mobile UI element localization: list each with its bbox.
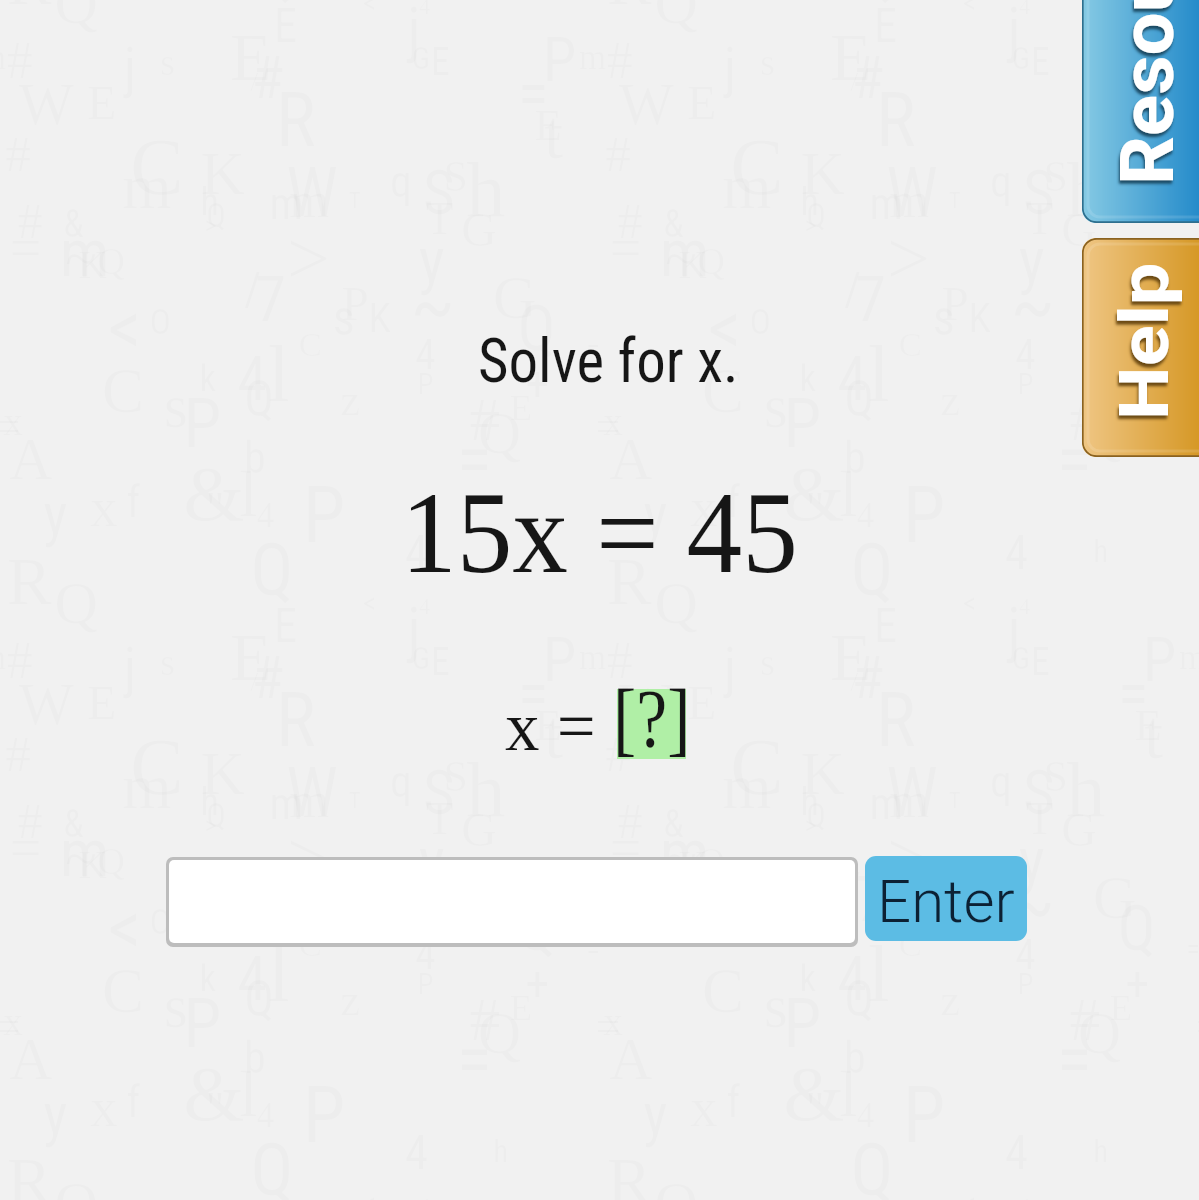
button[interactable]: Enter: [865, 856, 1027, 941]
staticText: Resources: [1103, 0, 1191, 185]
staticText: Solve for x.: [478, 324, 739, 397]
staticText: [?]: [613, 672, 691, 764]
staticText: 15x = 45: [401, 469, 798, 597]
button[interactable]: [166, 857, 858, 947]
staticText: Enter: [877, 866, 1015, 936]
staticText: Help: [1104, 262, 1185, 420]
button[interactable]: Resources: [1082, 0, 1199, 223]
button[interactable]: Help: [1082, 238, 1199, 457]
staticText: x =: [505, 689, 596, 765]
